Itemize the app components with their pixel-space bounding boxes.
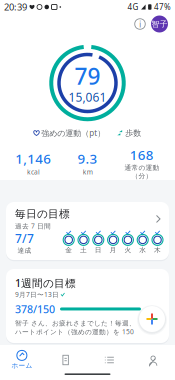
- staticText: 47%: [154, 2, 171, 12]
- staticText: 過去 7 日間: [15, 222, 51, 230]
- staticText: 15,061: [68, 89, 106, 105]
- button[interactable]: 毎日の目標: [6, 202, 169, 260]
- staticText: 7/7: [15, 230, 34, 246]
- staticText: 毎日の目標: [15, 207, 70, 221]
- staticText: 日: [95, 246, 102, 254]
- staticText: 168: [130, 146, 154, 164]
- staticText: 9.3: [77, 150, 97, 167]
- staticText: 9月7日〜13日: [15, 290, 59, 299]
- staticText: 水: [139, 246, 146, 254]
- staticText: 通常の運動 （分）: [124, 164, 159, 180]
- staticText: 1,146: [15, 150, 51, 167]
- staticText: 20:39: [4, 1, 27, 13]
- staticText: km: [82, 167, 92, 176]
- button[interactable]: ホーム: [0, 350, 44, 370]
- staticText: kcal: [27, 167, 40, 176]
- button[interactable]: 追加: [136, 303, 168, 335]
- staticText: 強めの運動（pt）: [39, 128, 105, 138]
- staticText: 達成: [17, 246, 31, 255]
- staticText: 4G: [128, 2, 139, 12]
- button[interactable]: 日記: [44, 350, 88, 370]
- staticText: 智子: [151, 19, 167, 29]
- button[interactable]: 情報: [129, 14, 151, 34]
- staticText: 378/150: [15, 302, 55, 316]
- button[interactable]: プロフィール: [131, 350, 175, 370]
- staticText: 智子 さん、お疲れさまでした！毎週、 ハートポイント（強めの運動）を 150: [15, 319, 136, 336]
- button[interactable]: 1週間の目標: [6, 269, 169, 343]
- staticText: 金: [65, 246, 72, 254]
- staticText: 土: [80, 246, 87, 254]
- button[interactable]: プロフィール: [151, 15, 168, 32]
- staticText: ホーム: [11, 361, 32, 370]
- staticText: 1週間の目標: [15, 276, 76, 290]
- button[interactable]: リスト: [87, 350, 131, 370]
- staticText: 火: [124, 246, 131, 254]
- staticText: 79: [74, 61, 100, 91]
- staticText: 月: [110, 246, 117, 254]
- staticText: i: [139, 18, 141, 30]
- staticText: 木: [154, 246, 161, 254]
- staticText: 歩数: [123, 128, 141, 138]
